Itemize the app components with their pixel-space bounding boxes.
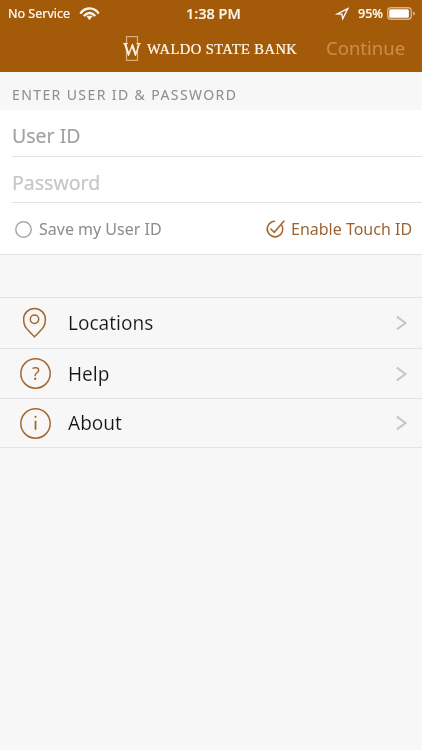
button[interactable]: ? (0, 349, 422, 398)
staticText: User ID (12, 122, 81, 149)
button[interactable]: About (0, 399, 422, 447)
button[interactable]: Enable Touch ID (256, 218, 422, 240)
staticText: Continue (326, 35, 406, 60)
staticText: Password (12, 169, 101, 196)
staticText: Save my User ID (39, 218, 162, 240)
staticText: Help (68, 361, 110, 387)
staticText: WALDO STATE BANK (147, 41, 298, 57)
staticText: Locations (68, 310, 154, 336)
staticText: ENTER USER ID & PASSWORD (12, 85, 238, 104)
staticText: ? (32, 361, 40, 386)
button[interactable]: Locations (0, 298, 422, 348)
staticText: 95% (358, 5, 383, 22)
staticText: W (123, 39, 141, 60)
button[interactable]: Save my User ID (0, 218, 172, 240)
staticText: About (68, 410, 122, 436)
staticText: Enable Touch ID (291, 218, 413, 240)
button[interactable]: Continue (309, 28, 422, 71)
staticText: 1:38 PM (186, 3, 241, 23)
staticText: No Service (8, 5, 71, 22)
